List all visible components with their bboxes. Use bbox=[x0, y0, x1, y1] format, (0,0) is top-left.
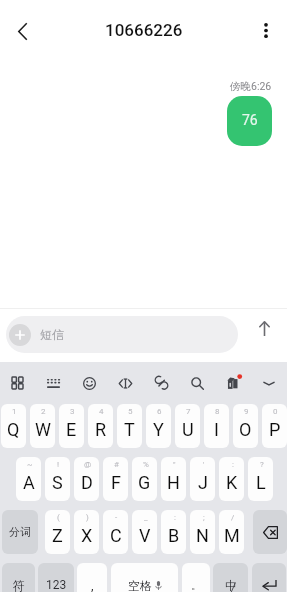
staticText: 1 bbox=[12, 407, 17, 416]
button[interactable]: ) bbox=[74, 510, 99, 554]
button[interactable]: 7 bbox=[175, 404, 200, 448]
button[interactable]: / bbox=[219, 510, 244, 554]
staticText: O bbox=[239, 419, 252, 440]
staticText: 短信 bbox=[40, 327, 64, 342]
staticText: 7 bbox=[186, 407, 191, 416]
staticText: ~ bbox=[27, 460, 33, 469]
button[interactable]: ~ bbox=[16, 457, 41, 501]
staticText: H bbox=[167, 472, 180, 493]
staticText: ) bbox=[86, 513, 89, 522]
staticText: L bbox=[256, 472, 266, 493]
staticText: ? bbox=[260, 460, 264, 469]
staticText: F bbox=[111, 472, 121, 493]
staticText: B bbox=[168, 525, 180, 546]
staticText: 76 bbox=[242, 112, 258, 128]
button[interactable]: Keyboard bbox=[35, 362, 71, 404]
button[interactable]: 2 bbox=[30, 404, 55, 448]
button[interactable]: Back bbox=[4, 13, 40, 49]
staticText: M bbox=[224, 525, 240, 546]
staticText: 空格 bbox=[128, 578, 152, 592]
button[interactable]: Send bbox=[250, 314, 279, 343]
staticText: Z bbox=[52, 525, 63, 546]
button[interactable]: : bbox=[161, 510, 186, 554]
staticText: I bbox=[214, 419, 219, 440]
button[interactable]: Apps bbox=[0, 362, 35, 404]
staticText: E bbox=[66, 419, 77, 440]
staticText: U bbox=[182, 419, 194, 440]
button[interactable]: 0 bbox=[262, 404, 287, 448]
staticText: % bbox=[143, 460, 149, 469]
staticText: : bbox=[174, 513, 176, 522]
button[interactable]: 5 bbox=[117, 404, 142, 448]
staticText: V bbox=[139, 525, 151, 546]
button[interactable]: Emoji bbox=[71, 362, 107, 404]
staticText: 中 bbox=[225, 578, 237, 592]
button[interactable]: 6 bbox=[146, 404, 171, 448]
staticText: J bbox=[198, 472, 208, 493]
staticText: 2 bbox=[41, 407, 46, 416]
button[interactable]: 123 bbox=[38, 563, 74, 592]
staticText: 。 bbox=[191, 579, 201, 592]
staticText: P bbox=[269, 419, 281, 440]
button[interactable]: ! bbox=[45, 457, 70, 501]
button[interactable]: 1 bbox=[1, 404, 26, 448]
button[interactable]: - bbox=[103, 510, 128, 554]
button[interactable]: ' bbox=[190, 457, 215, 501]
staticText: 6 bbox=[157, 407, 162, 416]
button[interactable]: 短信 bbox=[6, 316, 238, 353]
button[interactable]: # bbox=[103, 457, 128, 501]
button[interactable]: Backspace bbox=[253, 510, 287, 554]
staticText: 分词 bbox=[9, 525, 31, 539]
button[interactable]: _ bbox=[132, 510, 157, 554]
staticText: 4 bbox=[99, 407, 104, 416]
button[interactable]: 符 bbox=[2, 563, 35, 592]
button[interactable]: 分词 bbox=[2, 510, 38, 554]
button[interactable]: 。 bbox=[182, 563, 210, 592]
button[interactable]: ; bbox=[190, 510, 215, 554]
button[interactable]: 4 bbox=[88, 404, 113, 448]
button[interactable]: " bbox=[161, 457, 186, 501]
staticText: 3 bbox=[70, 407, 75, 416]
button[interactable]: Clipboard bbox=[215, 362, 251, 404]
button[interactable]: , bbox=[77, 563, 107, 592]
staticText: ( bbox=[57, 513, 60, 522]
staticText: Q bbox=[7, 419, 20, 440]
button[interactable]: Text tools bbox=[107, 362, 143, 404]
button[interactable]: Attach bbox=[143, 362, 179, 404]
staticText: N bbox=[196, 525, 209, 546]
button[interactable]: % bbox=[132, 457, 157, 501]
button[interactable]: 空格 bbox=[111, 563, 178, 592]
staticText: 8 bbox=[215, 407, 220, 416]
staticText: ' bbox=[203, 460, 205, 469]
staticText: C bbox=[110, 525, 122, 546]
staticText: # bbox=[114, 460, 119, 469]
staticText: _ bbox=[144, 513, 148, 522]
staticText: S bbox=[52, 472, 63, 493]
staticText: - bbox=[115, 513, 118, 522]
button[interactable]: 9 bbox=[233, 404, 258, 448]
button[interactable]: 8 bbox=[204, 404, 229, 448]
button[interactable]: Search bbox=[179, 362, 215, 404]
staticText: @ bbox=[84, 460, 92, 469]
staticText: K bbox=[226, 472, 238, 493]
button[interactable]: Enter bbox=[252, 563, 286, 592]
staticText: / bbox=[231, 513, 235, 522]
staticText: ; bbox=[203, 513, 205, 522]
button[interactable]: 76 bbox=[227, 96, 272, 146]
staticText: ! bbox=[57, 460, 60, 469]
button[interactable]: : bbox=[219, 457, 244, 501]
button[interactable]: ? bbox=[248, 457, 273, 501]
button[interactable]: Collapse bbox=[251, 362, 287, 404]
staticText: R bbox=[95, 419, 107, 440]
button[interactable]: 3 bbox=[59, 404, 84, 448]
staticText: , bbox=[91, 578, 94, 592]
button[interactable]: Switch language bbox=[213, 563, 248, 592]
staticText: G bbox=[138, 472, 151, 493]
button[interactable]: More options bbox=[248, 12, 284, 48]
button[interactable]: @ bbox=[74, 457, 99, 501]
staticText: : bbox=[232, 460, 234, 469]
button[interactable]: ( bbox=[45, 510, 70, 554]
staticText: X bbox=[81, 525, 93, 546]
staticText: 5 bbox=[128, 407, 133, 416]
staticText: 123 bbox=[46, 578, 67, 592]
